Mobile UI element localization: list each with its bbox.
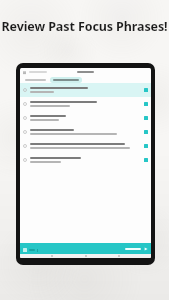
button[interactable]: Focus colour tag: [144, 116, 148, 120]
button[interactable]: Focus colour tag: [20, 111, 151, 125]
button[interactable]: Attach: [23, 248, 27, 252]
staticText: Review Past Focus Phrases!: [1, 18, 168, 35]
button[interactable]: Focus colour tag: [144, 102, 148, 106]
button[interactable]: Focus colour tag: [144, 88, 148, 92]
button[interactable]: Focus colour tag: [144, 158, 148, 162]
button[interactable]: Menu: [23, 71, 26, 74]
button[interactable]: Focus colour tag: [20, 139, 151, 153]
button[interactable]: Focus colour tag: [20, 153, 151, 167]
button[interactable]: Focus colour tag: [20, 97, 151, 111]
button[interactable]: Focus colour tag: [144, 144, 148, 148]
button[interactable]: Focus colour tag: [20, 83, 151, 97]
button[interactable]: Focus colour tag: [20, 125, 151, 139]
button[interactable]: Send: [144, 247, 148, 251]
button[interactable]: [23, 77, 48, 82]
button[interactable]: [50, 77, 82, 83]
button[interactable]: Focus colour tag: [144, 130, 148, 134]
